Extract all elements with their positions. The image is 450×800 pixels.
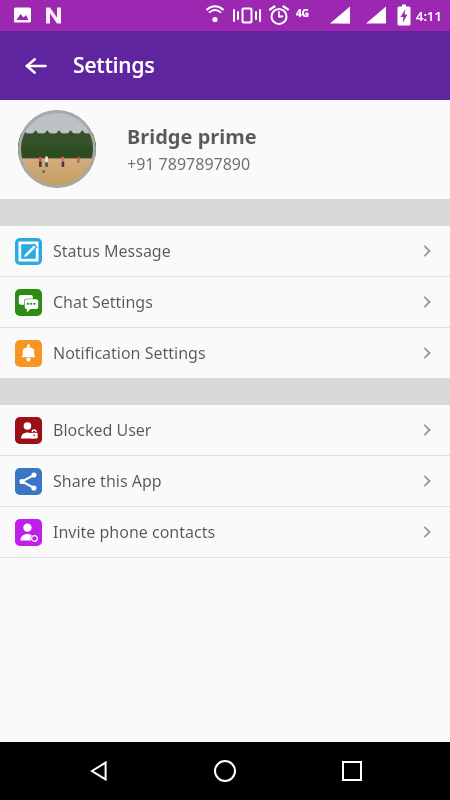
staticText: 4:11 [416, 7, 442, 25]
staticText: +91 7897897890 [127, 153, 251, 175]
staticText: Blocked User [53, 419, 418, 441]
button[interactable]: Invite phone contacts [0, 507, 450, 557]
staticText: Notification Settings [53, 342, 418, 364]
staticText: Invite phone contacts [53, 521, 418, 543]
staticText: Bridge prime [127, 123, 257, 150]
button[interactable]: Notification Settings [0, 328, 450, 378]
button[interactable]: Bridge prime [0, 100, 450, 197]
button[interactable]: Recent apps [324, 743, 380, 799]
button[interactable]: Share this App [0, 456, 450, 506]
staticText: 4G [296, 6, 309, 20]
button[interactable]: Back [71, 743, 127, 799]
staticText: Settings [73, 51, 155, 80]
button[interactable]: Blocked User [0, 405, 450, 455]
staticText: Chat Settings [53, 291, 418, 313]
button[interactable]: Home [197, 743, 253, 799]
staticText: Share this App [53, 470, 418, 492]
staticText: Status Message [53, 240, 418, 262]
button[interactable]: Chat Settings [0, 277, 450, 327]
button[interactable]: Back [14, 44, 58, 88]
button[interactable]: Status Message [0, 226, 450, 276]
